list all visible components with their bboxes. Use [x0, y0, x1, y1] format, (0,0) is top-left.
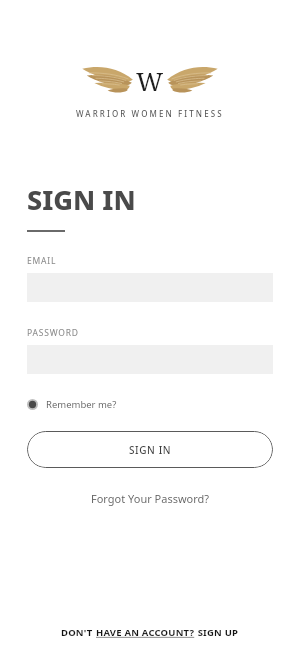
staticText: HAVE AN ACCOUNT? — [96, 626, 195, 639]
staticText: Remember me? — [46, 398, 117, 411]
staticText: SIGN IN — [27, 181, 136, 218]
staticText: DON'T — [61, 626, 96, 639]
button[interactable]: SIGN IN — [27, 431, 273, 468]
staticText: PASSWORD — [27, 327, 79, 339]
button[interactable]: DON'T — [55, 624, 245, 641]
button[interactable]: Remember me? — [27, 396, 117, 413]
button[interactable]: Forgot Your Password? — [87, 487, 214, 510]
staticText: W — [136, 63, 164, 98]
staticText: EMAIL — [27, 255, 57, 267]
staticText: SIGN UP — [195, 626, 239, 639]
staticText: SIGN IN — [129, 443, 172, 457]
staticText: WARRIOR WOMEN FITNESS — [76, 108, 224, 119]
